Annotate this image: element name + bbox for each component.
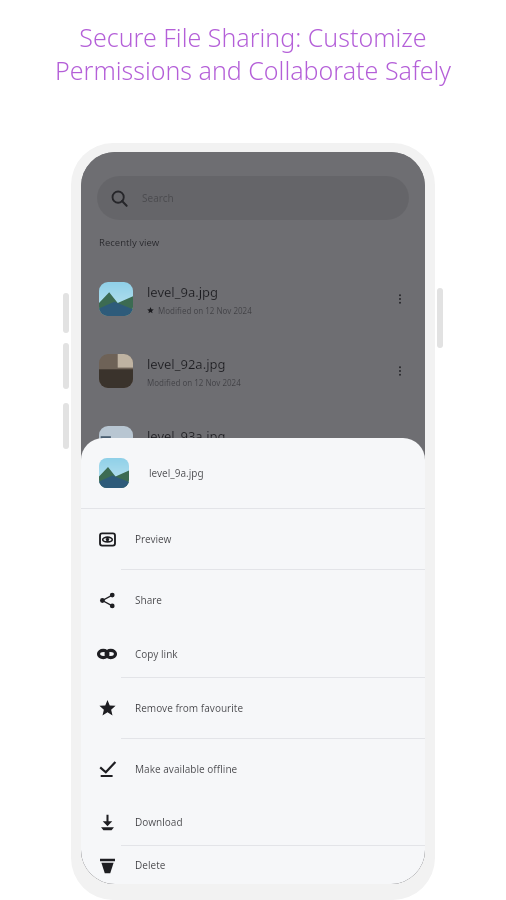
- staticText: Preview: [135, 532, 172, 546]
- staticText: level_9a.jpg: [149, 466, 204, 480]
- button[interactable]: Remove from favourite: [81, 678, 425, 738]
- staticText: Download: [135, 815, 183, 829]
- button[interactable]: More options: [385, 351, 415, 391]
- staticText: Recently view: [99, 236, 160, 249]
- button[interactable]: Download: [81, 798, 425, 845]
- staticText: level_94a.jpg: [147, 499, 226, 517]
- staticText: Modified on 12 Nov 2024: [158, 305, 252, 316]
- button[interactable]: level_92a.jpg: [81, 335, 425, 407]
- staticText: level_93a.jpg: [147, 427, 226, 445]
- staticText: level_9a.jpg: [147, 283, 219, 301]
- staticText: Modified on 12 Nov 2024: [147, 377, 241, 388]
- staticText: Share: [135, 593, 162, 607]
- button[interactable]: level_93a.jpg: [81, 407, 425, 479]
- staticText: Remove from favourite: [135, 701, 244, 715]
- button[interactable]: Delete: [81, 846, 425, 884]
- staticText: level_92a.jpg: [147, 355, 226, 373]
- other: Search: [111, 190, 128, 207]
- staticText: Search: [142, 191, 174, 205]
- button[interactable]: More options: [385, 279, 415, 319]
- button[interactable]: Share: [81, 570, 425, 630]
- button[interactable]: Search: [97, 176, 409, 220]
- button[interactable]: Preview: [81, 509, 425, 569]
- button[interactable]: Copy link: [81, 630, 425, 677]
- staticText: Secure File Sharing: Customize Permissio…: [18, 20, 488, 87]
- staticText: Copy link: [135, 647, 178, 661]
- staticText: Delete: [135, 858, 166, 872]
- button[interactable]: More options: [385, 423, 415, 463]
- button[interactable]: level_9a.jpg: [81, 263, 425, 335]
- button[interactable]: Make available offline: [81, 739, 425, 798]
- button[interactable]: level_94a.jpg: [81, 479, 425, 551]
- staticText: Make available offline: [135, 762, 238, 776]
- button[interactable]: level_9a.jpg: [81, 438, 425, 508]
